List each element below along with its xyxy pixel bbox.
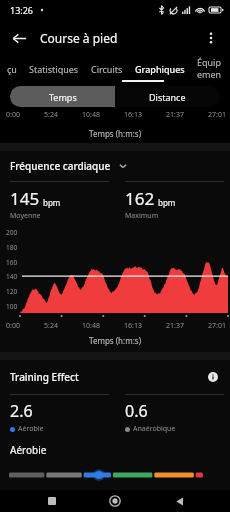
- staticText: 10:48: [82, 110, 100, 120]
- button[interactable]: Recent apps: [40, 490, 64, 512]
- staticText: bpm: [158, 197, 176, 208]
- button[interactable]: çu: [1, 56, 23, 82]
- staticText: 0.6: [125, 400, 148, 422]
- staticText: 21:37: [166, 321, 184, 331]
- staticText: 13:26: [10, 4, 34, 16]
- staticText: 180: [6, 243, 18, 252]
- staticText: 120: [6, 287, 18, 296]
- staticText: Graphiques: [135, 63, 185, 75]
- staticText: Aérobie: [10, 443, 47, 457]
- staticText: 140: [6, 272, 18, 281]
- staticText: Temps (h:m:s): [89, 335, 142, 346]
- staticText: 0:00: [6, 110, 20, 120]
- staticText: Course à pied: [40, 30, 118, 46]
- staticText: 21:37: [166, 110, 184, 120]
- staticText: Circuits: [91, 63, 123, 75]
- button[interactable]: Équipement: [191, 56, 230, 82]
- button[interactable]: Fréquence cardiaque: [10, 159, 220, 173]
- staticText: 160: [6, 258, 18, 267]
- button[interactable]: Distance: [115, 86, 220, 107]
- staticText: 162: [125, 187, 155, 210]
- staticText: 100: [6, 302, 18, 311]
- button[interactable]: Back: [167, 490, 191, 512]
- staticText: 200: [6, 228, 18, 237]
- button[interactable]: Statistiques: [23, 56, 85, 82]
- staticText: 2.6: [10, 400, 33, 422]
- button[interactable]: More options: [197, 24, 225, 52]
- staticText: 16:13: [124, 110, 142, 120]
- staticText: Maximum: [125, 211, 159, 221]
- staticText: Distance: [149, 91, 186, 103]
- staticText: Temps (h:m:s): [89, 128, 142, 139]
- staticText: 5:24: [44, 110, 58, 120]
- button[interactable]: Info: [205, 369, 221, 385]
- staticText: Training Effect: [10, 370, 79, 384]
- button[interactable]: Temps: [10, 86, 115, 107]
- staticText: 27:01: [208, 321, 226, 331]
- staticText: 5:24: [44, 321, 58, 331]
- staticText: çu: [7, 63, 17, 75]
- staticText: Anaérobique: [133, 424, 176, 434]
- staticText: bpm: [43, 197, 61, 208]
- staticText: Statistiques: [29, 63, 79, 75]
- staticText: Aérobie: [18, 424, 44, 434]
- staticText: 27:01: [208, 110, 226, 120]
- staticText: Moyenne: [10, 211, 41, 221]
- staticText: 145: [10, 187, 40, 210]
- button[interactable]: Circuits: [85, 56, 129, 82]
- staticText: Équipement: [197, 56, 224, 82]
- staticText: 16:13: [124, 321, 142, 331]
- staticText: 10:48: [82, 321, 100, 331]
- button[interactable]: Home: [103, 490, 127, 512]
- staticText: 0:00: [6, 321, 20, 331]
- button[interactable]: Back: [5, 24, 33, 52]
- staticText: Fréquence cardiaque: [10, 159, 111, 173]
- button[interactable]: Graphiques: [129, 56, 191, 82]
- staticText: Temps: [49, 91, 77, 103]
